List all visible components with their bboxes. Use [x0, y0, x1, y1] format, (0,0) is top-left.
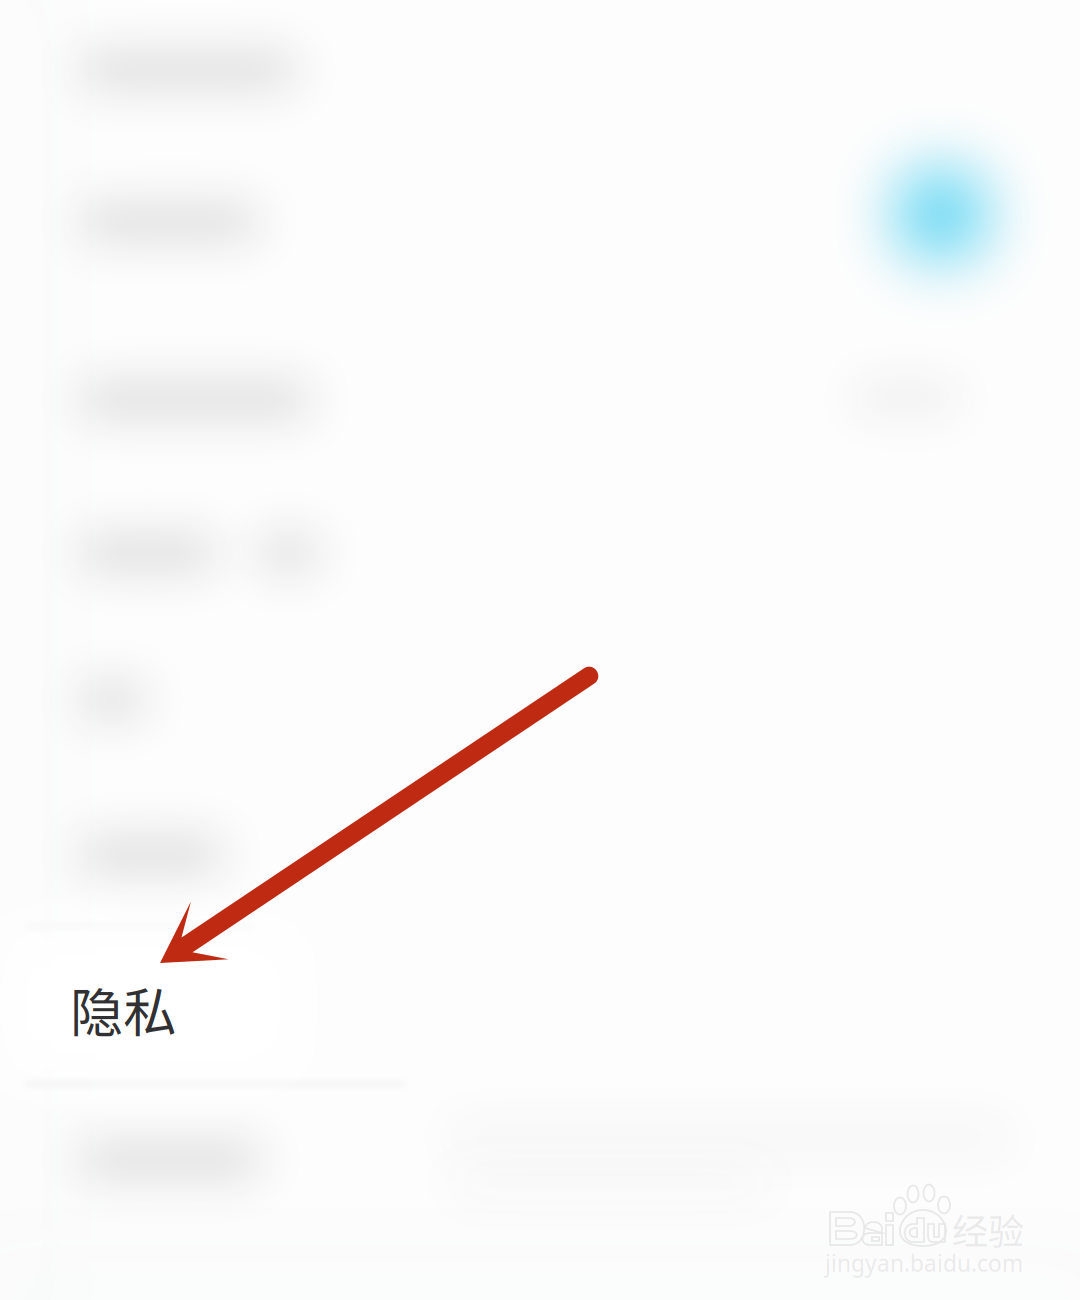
staticText: 经验 [952, 1203, 1024, 1255]
staticText: jingyan.baidu.com [825, 1248, 1023, 1278]
button[interactable]: 隐私 [70, 933, 374, 1085]
staticText: 隐私 [70, 970, 176, 1048]
